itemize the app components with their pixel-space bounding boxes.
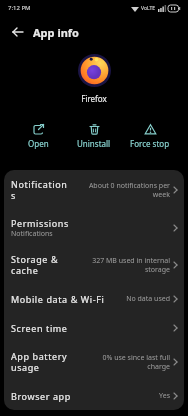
staticText: Uninstall (77, 138, 111, 149)
staticText: Force stop (130, 138, 170, 149)
staticText: 7:12 PM (8, 4, 31, 12)
staticText: Yes (145, 391, 170, 401)
staticText: Screen time (11, 322, 68, 334)
button[interactable]: Browser app (4, 381, 184, 410)
staticText: Notification s (11, 178, 68, 202)
staticText: 0% use since last full charge (88, 353, 170, 371)
staticText: Firefox (0, 93, 188, 104)
staticText: App battery usage (11, 350, 68, 374)
staticText: Open (28, 138, 49, 149)
staticText: Permissions (11, 217, 69, 229)
staticText: No data used (118, 294, 170, 304)
button[interactable]: Screen time (4, 313, 184, 342)
staticText: VoLTE (141, 5, 156, 12)
staticText: 327 MB used in internal storage (82, 256, 170, 274)
button[interactable]: Mobile data & Wi-Fi (4, 284, 184, 313)
button[interactable]: Uninstall (66, 123, 122, 149)
staticText: Mobile data & Wi-Fi (11, 293, 105, 305)
button[interactable]: Open (10, 123, 66, 149)
button[interactable]: Force stop (122, 123, 178, 149)
button[interactable] (12, 26, 24, 38)
staticText: About 0 notifications per week (80, 181, 170, 199)
button[interactable]: App battery usage (4, 342, 184, 381)
button[interactable]: Notification s (4, 170, 184, 209)
staticText: App info (33, 25, 79, 40)
staticText: Storage & cache (11, 253, 59, 277)
button[interactable]: Storage & cache (4, 246, 184, 284)
button[interactable]: Permissions (4, 209, 184, 246)
staticText: Browser app (11, 390, 71, 402)
staticText: Notifications (11, 229, 53, 239)
